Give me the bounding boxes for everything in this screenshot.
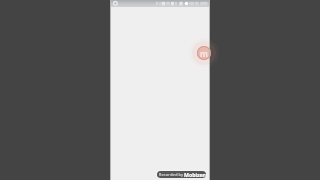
staticText: Recorded by	[158, 172, 184, 178]
staticText: Mobizen	[184, 171, 206, 178]
staticText: m	[200, 48, 208, 59]
button[interactable]: Screen recorder bubble	[189, 38, 219, 68]
